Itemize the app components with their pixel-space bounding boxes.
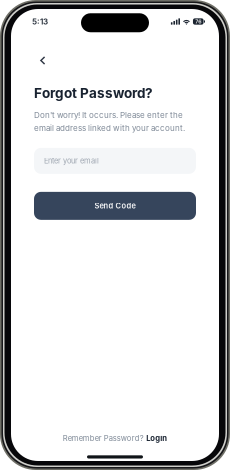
staticText: 5:13 [32, 17, 48, 26]
staticText: Forgot Password? [34, 85, 153, 101]
button[interactable]: Send Code [34, 192, 196, 220]
staticText: Don't worry! It occurs. Please enter the… [34, 110, 185, 133]
staticText: Remember Password? [63, 434, 144, 443]
button[interactable]: Back [33, 51, 62, 70]
staticText: Send Code [94, 201, 135, 210]
staticText: Login [146, 434, 167, 443]
staticText: 76 [195, 18, 201, 25]
button[interactable]: Login [146, 434, 167, 443]
staticText: Enter your email [44, 156, 99, 165]
